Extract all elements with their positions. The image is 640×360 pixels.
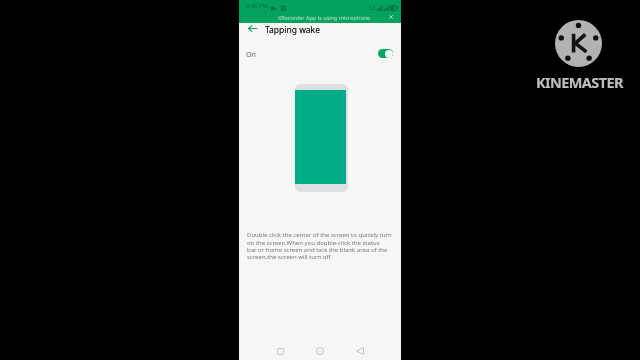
button[interactable]: Home — [311, 342, 329, 360]
button[interactable]: Back — [243, 19, 261, 37]
button[interactable]: On — [239, 44, 401, 63]
button[interactable]: Recent apps — [271, 342, 289, 360]
staticText: Tapping wake — [265, 24, 320, 36]
staticText: KINEMASTER — [536, 72, 623, 92]
staticText: 52 — [369, 4, 376, 12]
staticText: Double click the center of the screen to… — [247, 231, 397, 261]
staticText: 9:40 PM — [246, 2, 268, 10]
staticText: XRecorder App is using microphone — [278, 14, 371, 21]
button[interactable]: Dismiss notification — [386, 12, 396, 22]
button[interactable]: Back — [351, 342, 369, 360]
staticText: On — [246, 49, 257, 59]
staticText: Tapping wake — [265, 24, 320, 36]
